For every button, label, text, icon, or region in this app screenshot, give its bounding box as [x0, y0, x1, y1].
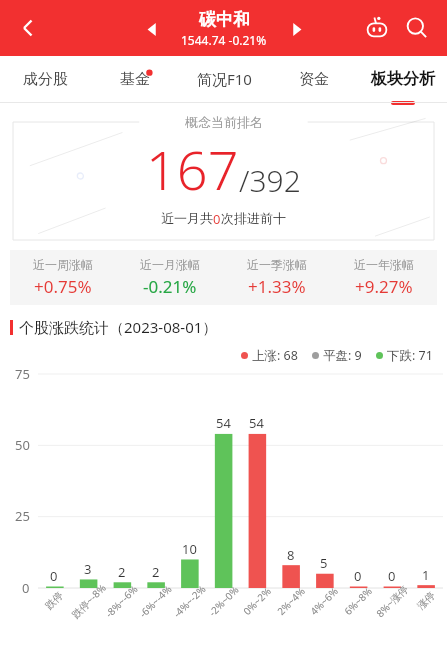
staticText: 2%~4%: [274, 584, 308, 618]
button[interactable]: 近一年涨幅: [330, 257, 437, 298]
staticText: 涨停: [414, 589, 438, 612]
staticText: 次排进前十: [221, 210, 286, 226]
button[interactable]: 54: [216, 414, 231, 432]
staticText: 上涨: 68: [252, 347, 298, 364]
staticText: 下跌: 71: [387, 347, 433, 364]
staticText: -6%~-4%: [136, 582, 175, 620]
staticText: 近一季涨幅: [247, 257, 307, 272]
button[interactable]: 板块分析: [358, 56, 447, 102]
staticText: 近一月共: [161, 210, 213, 226]
staticText: 167: [146, 132, 239, 206]
staticText: 成分股: [23, 70, 68, 89]
button[interactable]: 成分股: [0, 56, 90, 102]
staticText: 75: [15, 365, 30, 383]
staticText: 8%~涨停: [373, 582, 411, 620]
staticText: -2%~0%: [205, 583, 242, 619]
button[interactable]: 0: [50, 567, 58, 585]
button[interactable]: Previous: [137, 14, 167, 44]
staticText: 25: [15, 507, 30, 525]
button[interactable]: 2: [118, 563, 126, 581]
button[interactable]: 0: [354, 567, 362, 585]
button[interactable]: 8: [287, 546, 295, 564]
button[interactable]: 基金: [90, 56, 180, 102]
button[interactable]: Back: [6, 6, 50, 50]
staticText: 碳中和: [199, 9, 250, 30]
button[interactable]: 近一月涨幅: [116, 257, 223, 298]
staticText: 近一月涨幅: [140, 257, 200, 272]
button[interactable]: Assistant: [357, 8, 397, 48]
staticText: +9.27%: [355, 275, 413, 298]
button[interactable]: 简况F10: [180, 56, 269, 102]
button[interactable]: 资金: [269, 56, 358, 102]
button[interactable]: Search: [397, 8, 437, 48]
staticText: -0.21%: [143, 275, 197, 298]
button[interactable]: 2: [152, 563, 160, 581]
staticText: /392: [239, 160, 301, 201]
staticText: 近一年涨幅: [354, 257, 414, 272]
button[interactable]: 10: [182, 540, 197, 558]
button[interactable]: 54: [249, 414, 264, 432]
staticText: 0: [22, 579, 30, 597]
button[interactable]: 0: [388, 567, 396, 585]
button[interactable]: Next: [281, 14, 311, 44]
staticText: 平盘: 9: [323, 347, 362, 364]
button[interactable]: 近一周涨幅: [10, 257, 116, 298]
button[interactable]: 3: [84, 560, 92, 578]
staticText: 1544.74 -0.21%: [181, 32, 267, 48]
button[interactable]: 近一季涨幅: [223, 257, 330, 298]
staticText: 6%~8%: [341, 584, 375, 618]
button[interactable]: 1: [422, 566, 430, 584]
staticText: 基金: [120, 70, 150, 89]
staticText: 简况F10: [197, 69, 252, 89]
staticText: 板块分析: [371, 69, 435, 89]
staticText: 资金: [299, 70, 329, 89]
staticText: +0.75%: [34, 275, 92, 298]
staticText: 跌停~-8%: [68, 581, 109, 621]
staticText: 50: [15, 436, 30, 454]
staticText: 概念当前排名: [185, 114, 263, 130]
staticText: -8%~-6%: [102, 582, 141, 620]
staticText: 跌停: [42, 589, 66, 612]
staticText: 0%~2%: [240, 584, 274, 618]
staticText: 近一周涨幅: [33, 257, 93, 272]
staticText: 0: [213, 210, 221, 228]
staticText: 4%~6%: [307, 584, 341, 618]
staticText: +1.33%: [248, 275, 306, 298]
button[interactable]: 5: [320, 554, 328, 572]
staticText: -4%~-2%: [170, 582, 209, 620]
staticText: 个股涨跌统计（2023-08-01）: [19, 317, 218, 337]
